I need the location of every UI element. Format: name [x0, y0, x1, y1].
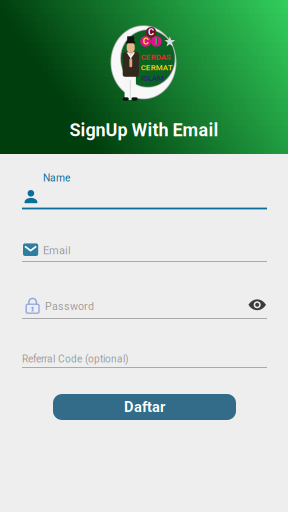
- staticText: CERMAT: [141, 63, 173, 72]
- staticText: Email: [43, 244, 71, 257]
- staticText: Referral Code (optional): [22, 353, 129, 365]
- staticText: Password: [45, 300, 94, 312]
- staticText: I: [155, 36, 158, 47]
- button[interactable]: Show password: [242, 292, 272, 318]
- staticText: Daftar: [124, 398, 165, 416]
- staticText: ISLAM: [141, 73, 164, 83]
- staticText: C: [148, 27, 154, 37]
- button[interactable]: Daftar: [53, 394, 236, 420]
- staticText: CERDAS: [141, 52, 171, 62]
- staticText: SignUp With Email: [69, 119, 218, 141]
- staticText: Name: [43, 172, 70, 184]
- staticText: C: [143, 36, 149, 47]
